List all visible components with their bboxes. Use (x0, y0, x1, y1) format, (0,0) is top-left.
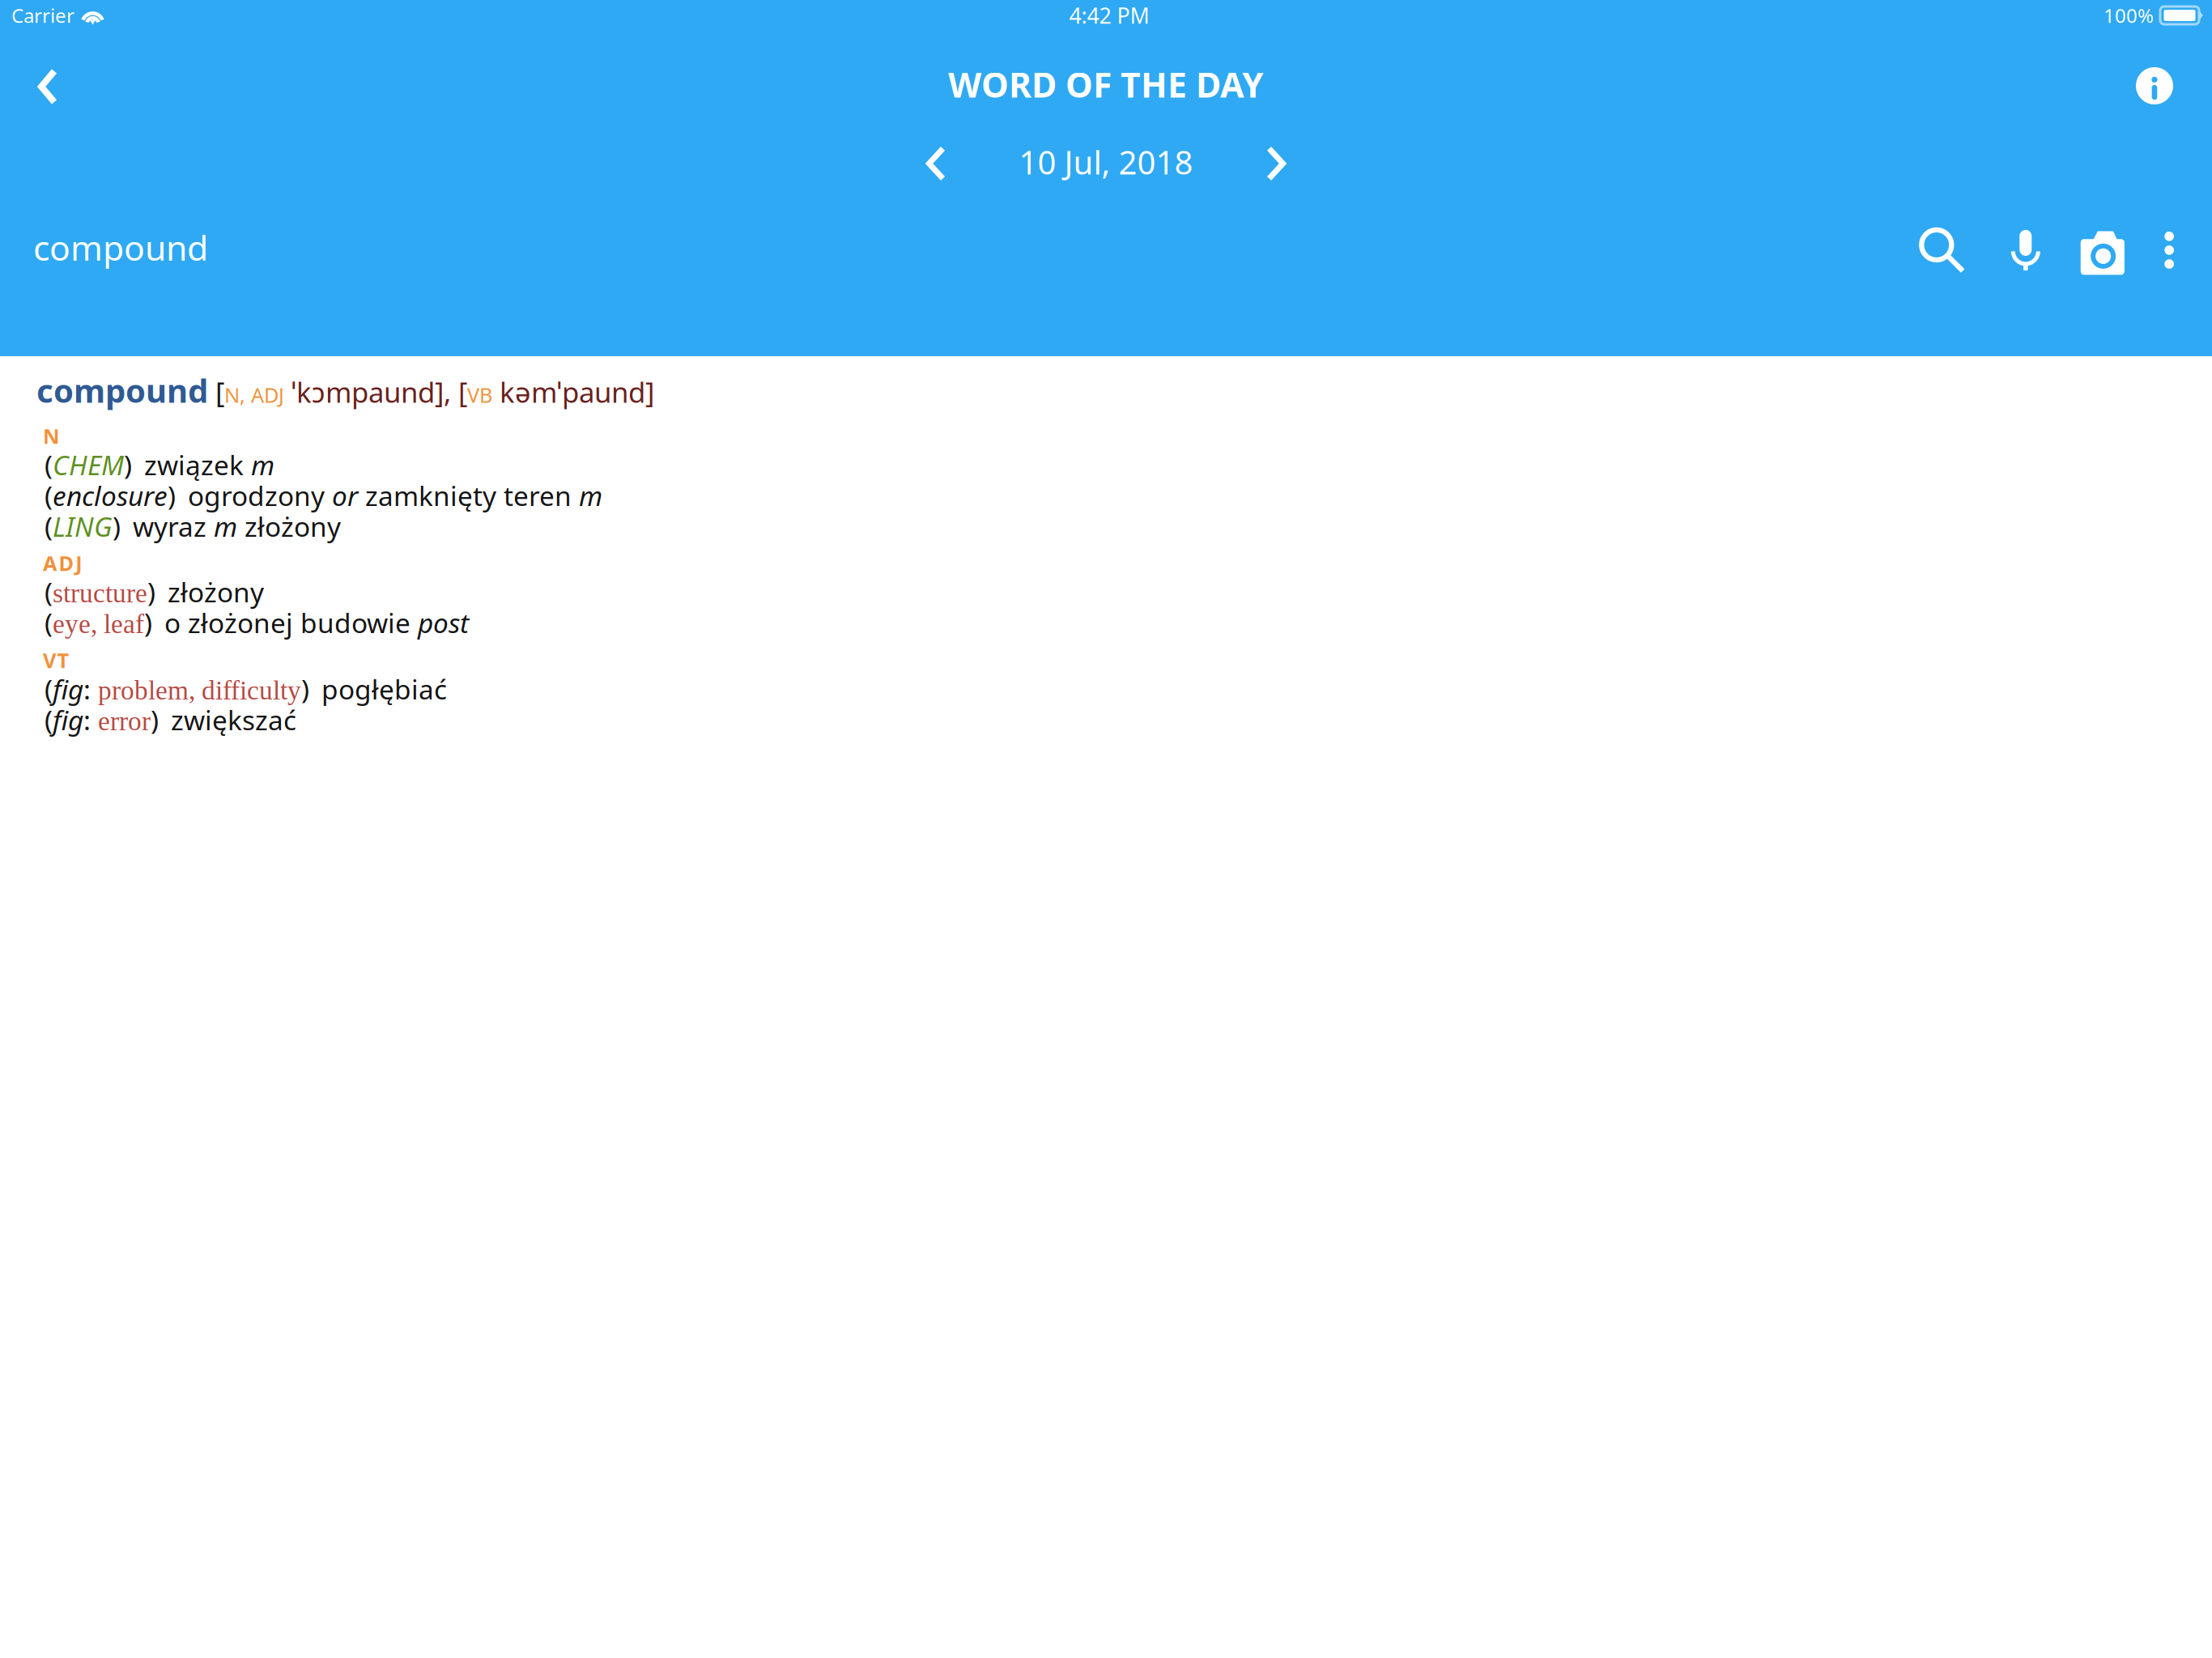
button[interactable]: Next day (1256, 130, 1302, 194)
staticText: 100% (2104, 3, 2154, 28)
staticText: compound (33, 224, 208, 270)
staticText: ( (45, 702, 53, 738)
button[interactable]: compound (0, 216, 208, 278)
staticText: : (83, 671, 98, 707)
staticText: : (83, 702, 98, 738)
button[interactable]: Info (2109, 50, 2212, 120)
staticText: ( (45, 671, 53, 707)
staticText: ) pogłębiać (301, 671, 447, 707)
staticText: ) ogrodzony (168, 478, 332, 513)
staticText: ) złożony (147, 574, 264, 610)
staticText: ( (45, 605, 53, 641)
staticText: compound (36, 369, 208, 412)
staticText: ADJ (43, 549, 82, 577)
staticText: ( (45, 447, 53, 483)
staticText: VT (43, 647, 69, 674)
button[interactable]: Search (1901, 221, 1984, 273)
staticText: error (98, 706, 151, 736)
staticText: ) związek (124, 447, 251, 483)
staticText: N (43, 422, 60, 450)
staticText: ( (45, 574, 53, 610)
staticText: zamknięty teren (358, 478, 579, 513)
staticText: ) zwiększać (151, 702, 296, 738)
staticText: post (418, 605, 469, 641)
staticText: problem, difficulty (98, 675, 301, 705)
staticText: ˈkɔmpaund], [ (284, 373, 467, 411)
staticText: m (579, 478, 602, 513)
staticText: 10 Jul, 2018 (1019, 140, 1193, 183)
staticText: CHEM (53, 447, 124, 483)
staticText: enclosure (53, 478, 168, 513)
button[interactable]: Previous day (910, 130, 956, 194)
staticText: eye, leaf (53, 609, 144, 639)
staticText: kəmˈpaund] (492, 373, 654, 411)
staticText: WORD OF THE DAY (948, 61, 1264, 107)
staticText: fig (53, 671, 83, 707)
staticText: structure (53, 578, 147, 608)
staticText: m (251, 447, 274, 483)
staticText: N, ADJ (224, 381, 284, 408)
staticText: ( (45, 508, 53, 544)
staticText: 4:42 PM (1069, 1, 1149, 30)
button[interactable]: More options (2138, 221, 2212, 273)
staticText: fig (53, 702, 83, 738)
staticText: ) o złożonej budowie (144, 605, 418, 641)
button[interactable]: Back (0, 52, 84, 125)
staticText: LING (53, 508, 113, 544)
staticText: Carrier (11, 3, 74, 28)
staticText: ) wyraz (113, 508, 214, 544)
staticText: VB (467, 381, 492, 408)
staticText: [ (208, 373, 224, 411)
staticText: ( (45, 478, 53, 513)
staticText: złożony (237, 508, 341, 544)
button[interactable]: Camera search (2067, 221, 2138, 273)
button[interactable]: Voice search (1984, 221, 2067, 273)
staticText: m (214, 508, 237, 544)
staticText: or (332, 478, 358, 513)
